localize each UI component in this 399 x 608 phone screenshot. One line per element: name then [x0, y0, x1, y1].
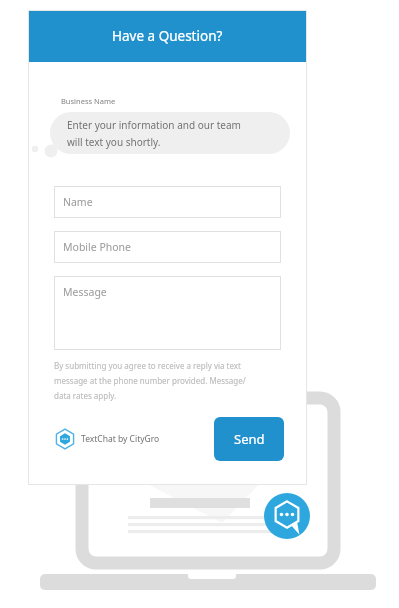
staticText: Mobile Phone	[63, 240, 132, 254]
button[interactable]: Message	[54, 276, 281, 350]
staticText: message at the phone number provided. Me…	[54, 375, 246, 386]
staticText: data rates apply.	[54, 390, 117, 401]
button[interactable]: Mobile Phone	[54, 231, 281, 263]
button[interactable]: Name	[54, 186, 281, 218]
staticText: By submitting you agree to receive a rep…	[54, 360, 241, 371]
staticText: Message	[63, 285, 107, 299]
button[interactable]: Open chat	[264, 493, 310, 539]
button[interactable]: TextChat by CityGro	[54, 428, 160, 450]
staticText: Name	[63, 195, 93, 209]
staticText: Send	[234, 430, 265, 448]
staticText: TextChat by CityGro	[81, 433, 160, 445]
staticText: will text you shortly.	[67, 135, 161, 149]
staticText: Have a Question?	[112, 27, 223, 45]
staticText: Enter your information and our team	[67, 118, 241, 132]
staticText: Business Name	[61, 96, 116, 106]
button[interactable]: Send	[214, 417, 284, 461]
